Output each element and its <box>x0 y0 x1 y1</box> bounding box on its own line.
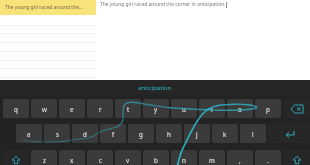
staticText: d <box>83 130 87 138</box>
button[interactable]: anticipation <box>138 84 172 92</box>
staticText: t <box>127 105 130 113</box>
button[interactable]: z <box>31 150 57 165</box>
staticText: The young girl raced around the… <box>5 4 83 11</box>
button[interactable]: q <box>3 99 29 118</box>
button[interactable]: o <box>227 99 253 118</box>
staticText: l <box>252 130 254 138</box>
button[interactable] <box>0 51 96 60</box>
button[interactable]: n <box>171 150 197 165</box>
staticText: m <box>209 156 215 164</box>
button[interactable]: l <box>240 124 266 143</box>
button[interactable]: c <box>87 150 113 165</box>
button[interactable]: g <box>128 124 154 143</box>
button[interactable] <box>0 68 96 77</box>
staticText: o <box>238 105 242 113</box>
button[interactable]: j <box>184 124 210 143</box>
staticText: p <box>266 105 270 113</box>
staticText: k <box>223 130 227 138</box>
staticText: b <box>154 156 158 164</box>
staticText: u <box>182 105 186 113</box>
button[interactable]: v <box>115 150 141 165</box>
staticText: q <box>14 105 18 113</box>
button[interactable] <box>0 42 96 51</box>
staticText: j <box>196 130 198 138</box>
button[interactable]: f <box>100 124 126 143</box>
staticText: . <box>267 156 269 164</box>
button[interactable]: b <box>143 150 169 165</box>
staticText: The young girl raced around the corner i… <box>100 1 226 8</box>
button[interactable] <box>0 33 96 42</box>
staticText: i <box>211 105 213 113</box>
button[interactable]: Shift <box>283 150 310 165</box>
button[interactable]: p <box>255 99 281 118</box>
button[interactable]: y <box>143 99 169 118</box>
staticText: s <box>56 130 59 138</box>
staticText: , <box>239 156 241 164</box>
staticText: a <box>27 130 31 138</box>
button[interactable]: , <box>227 150 253 165</box>
button[interactable] <box>0 60 96 69</box>
button[interactable]: h <box>156 124 182 143</box>
staticText: w <box>42 105 47 113</box>
button[interactable]: Enter <box>268 124 310 143</box>
button[interactable]: r <box>87 99 113 118</box>
button[interactable]: . <box>255 150 281 165</box>
button[interactable]: x <box>59 150 85 165</box>
staticText: c <box>99 156 102 164</box>
button[interactable]: k <box>212 124 238 143</box>
button[interactable]: e <box>59 99 85 118</box>
button[interactable]: t <box>115 99 141 118</box>
staticText: z <box>43 156 46 164</box>
button[interactable]: w <box>31 99 57 118</box>
staticText: e <box>70 105 74 113</box>
button[interactable]: s <box>44 124 70 143</box>
staticText: h <box>167 130 171 138</box>
staticText: x <box>70 156 74 164</box>
staticText: g <box>139 130 143 138</box>
staticText: r <box>99 105 102 113</box>
staticText: n <box>182 156 186 164</box>
button[interactable]: Shift <box>3 150 29 165</box>
button[interactable]: a <box>16 124 42 143</box>
button[interactable]: m <box>199 150 225 165</box>
staticText: v <box>126 156 130 164</box>
button[interactable]: d <box>72 124 98 143</box>
button[interactable]: The young girl raced around the… <box>0 0 96 15</box>
staticText: f <box>112 130 115 138</box>
button[interactable]: u <box>171 99 197 118</box>
button[interactable]: i <box>199 99 225 118</box>
staticText: y <box>154 105 158 113</box>
button[interactable]: Backspace <box>283 99 310 118</box>
button[interactable] <box>0 25 96 34</box>
